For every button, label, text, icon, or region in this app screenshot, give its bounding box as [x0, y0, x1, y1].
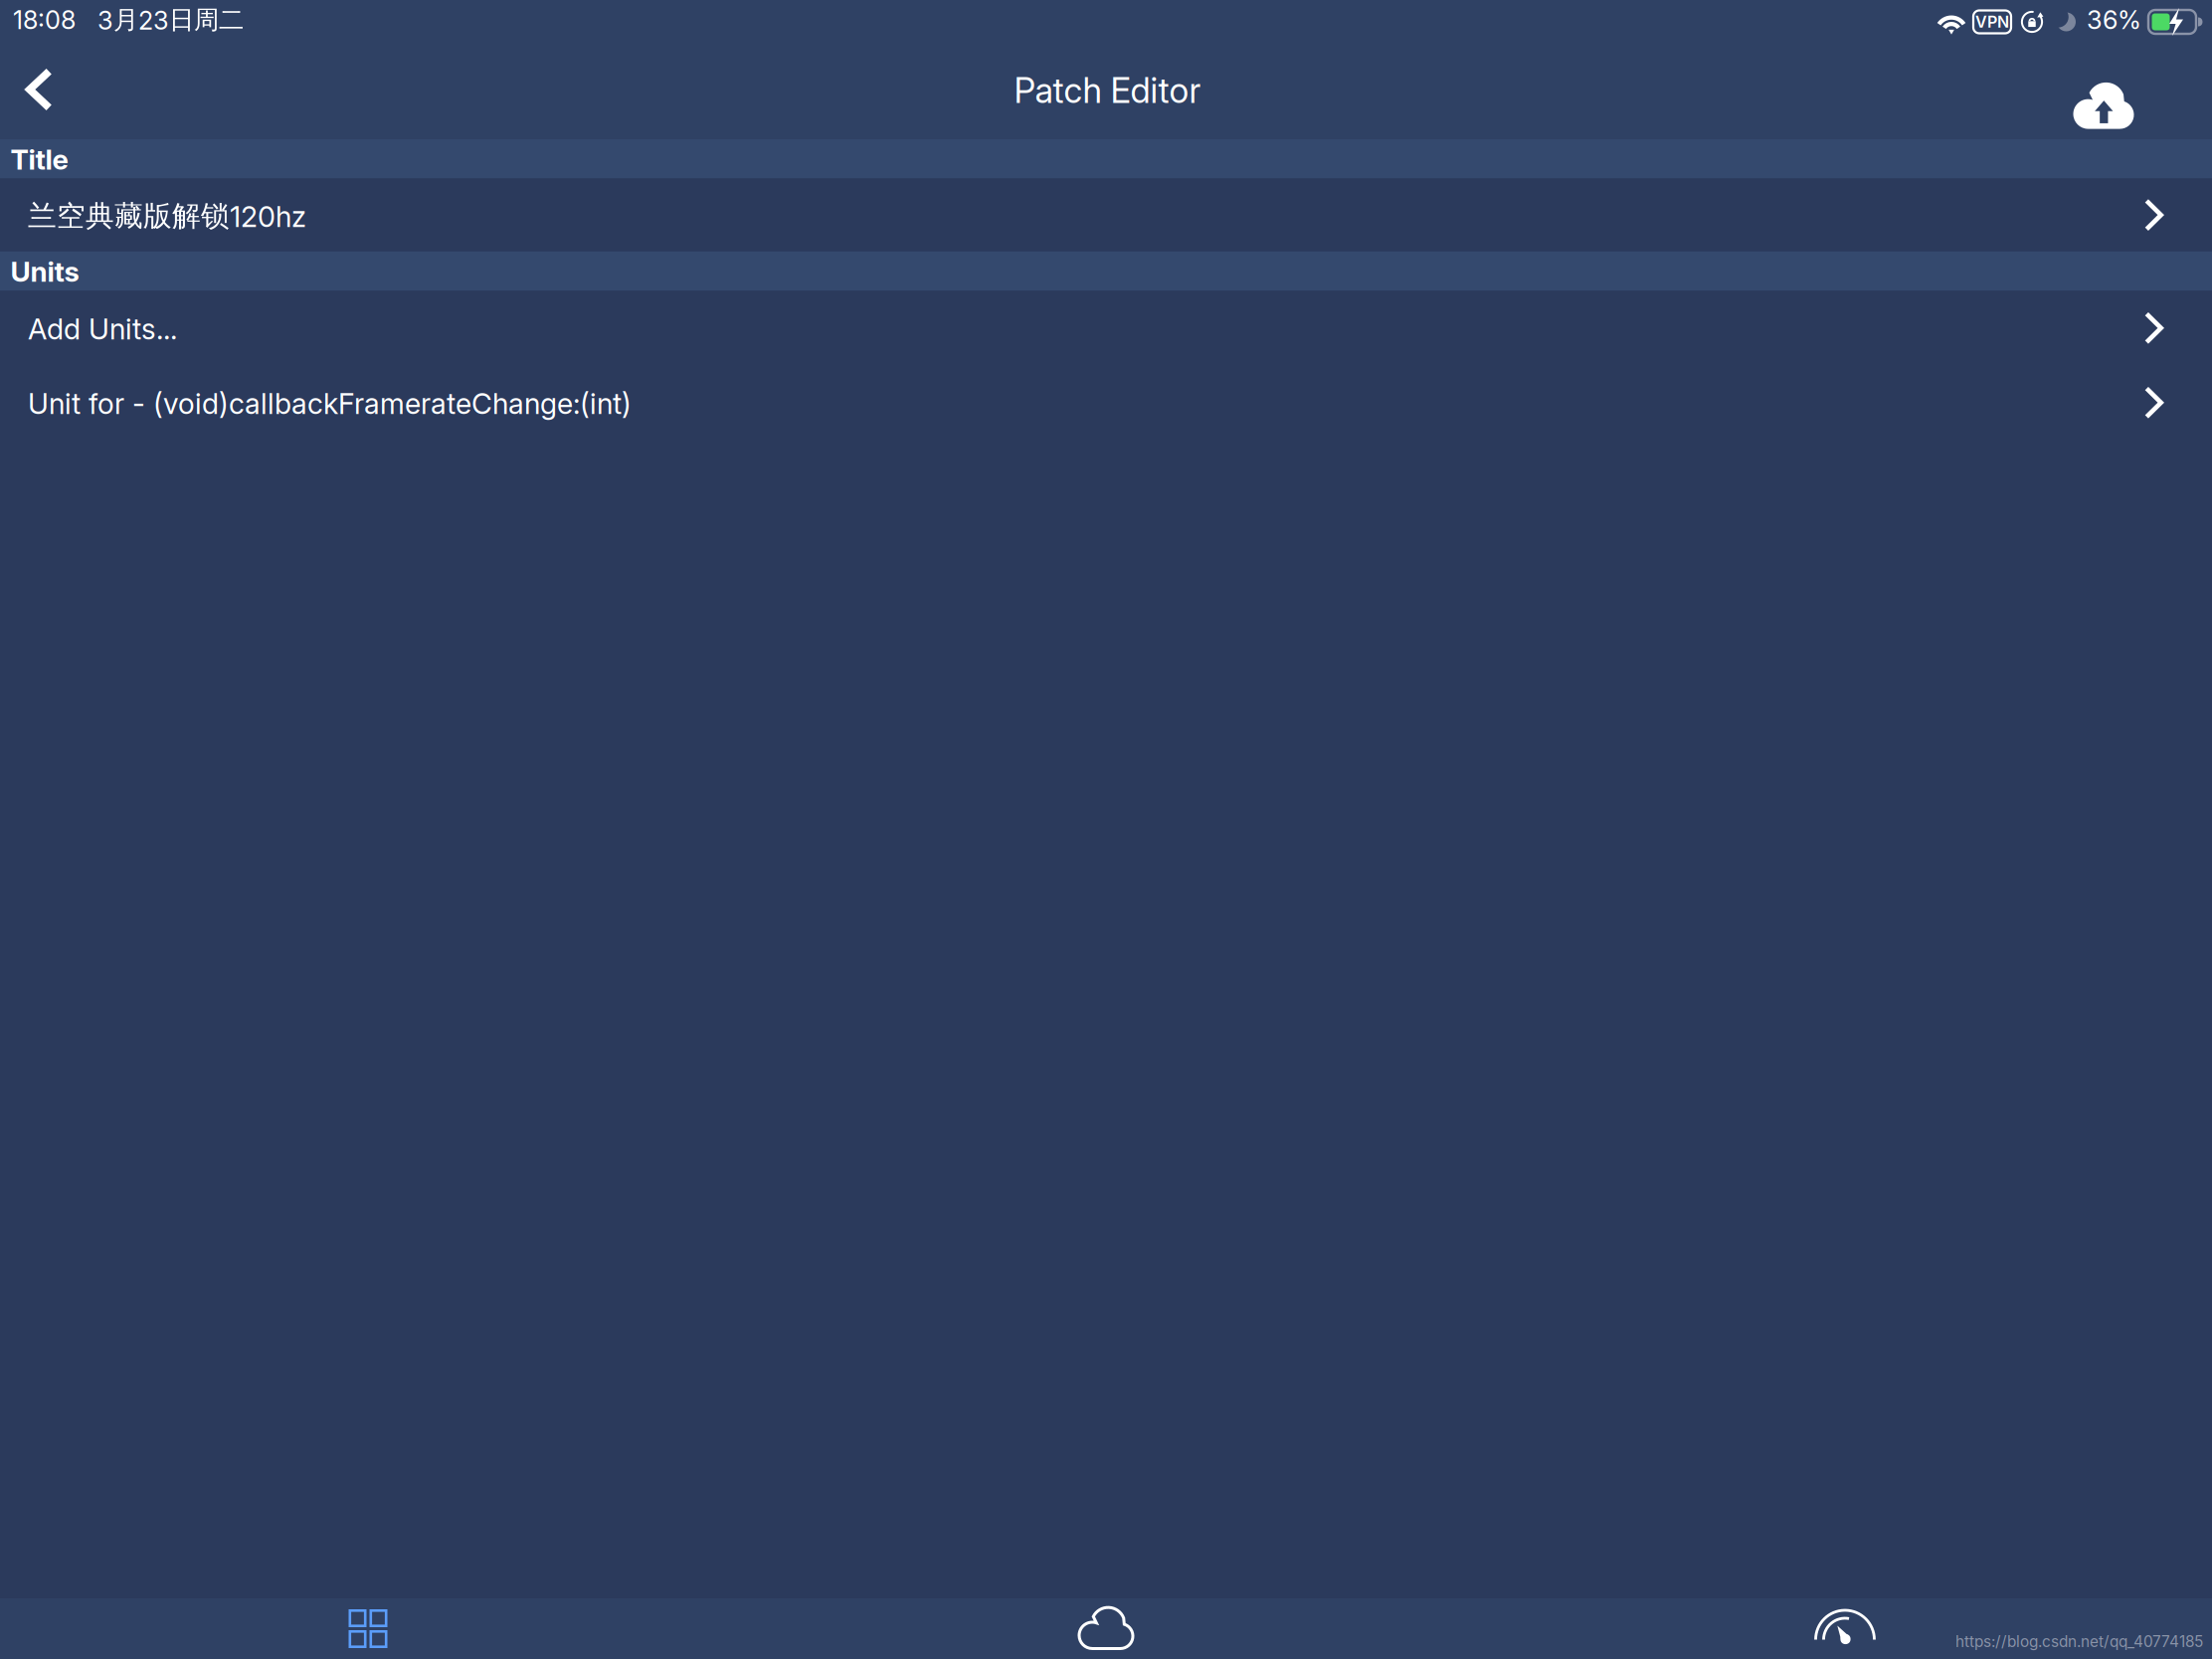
staticText: Units [10, 255, 79, 288]
button[interactable]: Units library [328, 1598, 408, 1659]
button[interactable]: Add Units... [0, 291, 2212, 365]
button[interactable]: Cloud patches [1066, 1598, 1146, 1659]
staticText: VPN [1975, 12, 2009, 32]
button[interactable]: Unit for - (void)callbackFramerateChange… [0, 365, 2212, 440]
staticText: Unit for - (void)callbackFramerateChange… [28, 386, 632, 421]
staticText: Add Units... [28, 312, 177, 346]
button[interactable]: Back [0, 44, 76, 139]
staticText: 3月23日周二 [97, 4, 244, 36]
button[interactable]: Performance [1805, 1598, 1885, 1659]
staticText: https://blog.csdn.net/qq_40774185 [1955, 1632, 2203, 1651]
button[interactable]: 兰空典藏版解锁120hz [0, 179, 2212, 251]
staticText: 36% [2087, 5, 2141, 35]
staticText: Patch Editor [1014, 70, 1201, 111]
button[interactable]: Upload to cloud [2058, 44, 2149, 139]
staticText: 18:08 [13, 5, 76, 35]
staticText: Title [10, 143, 68, 176]
staticText: 兰空典藏版解锁120hz [28, 198, 306, 234]
